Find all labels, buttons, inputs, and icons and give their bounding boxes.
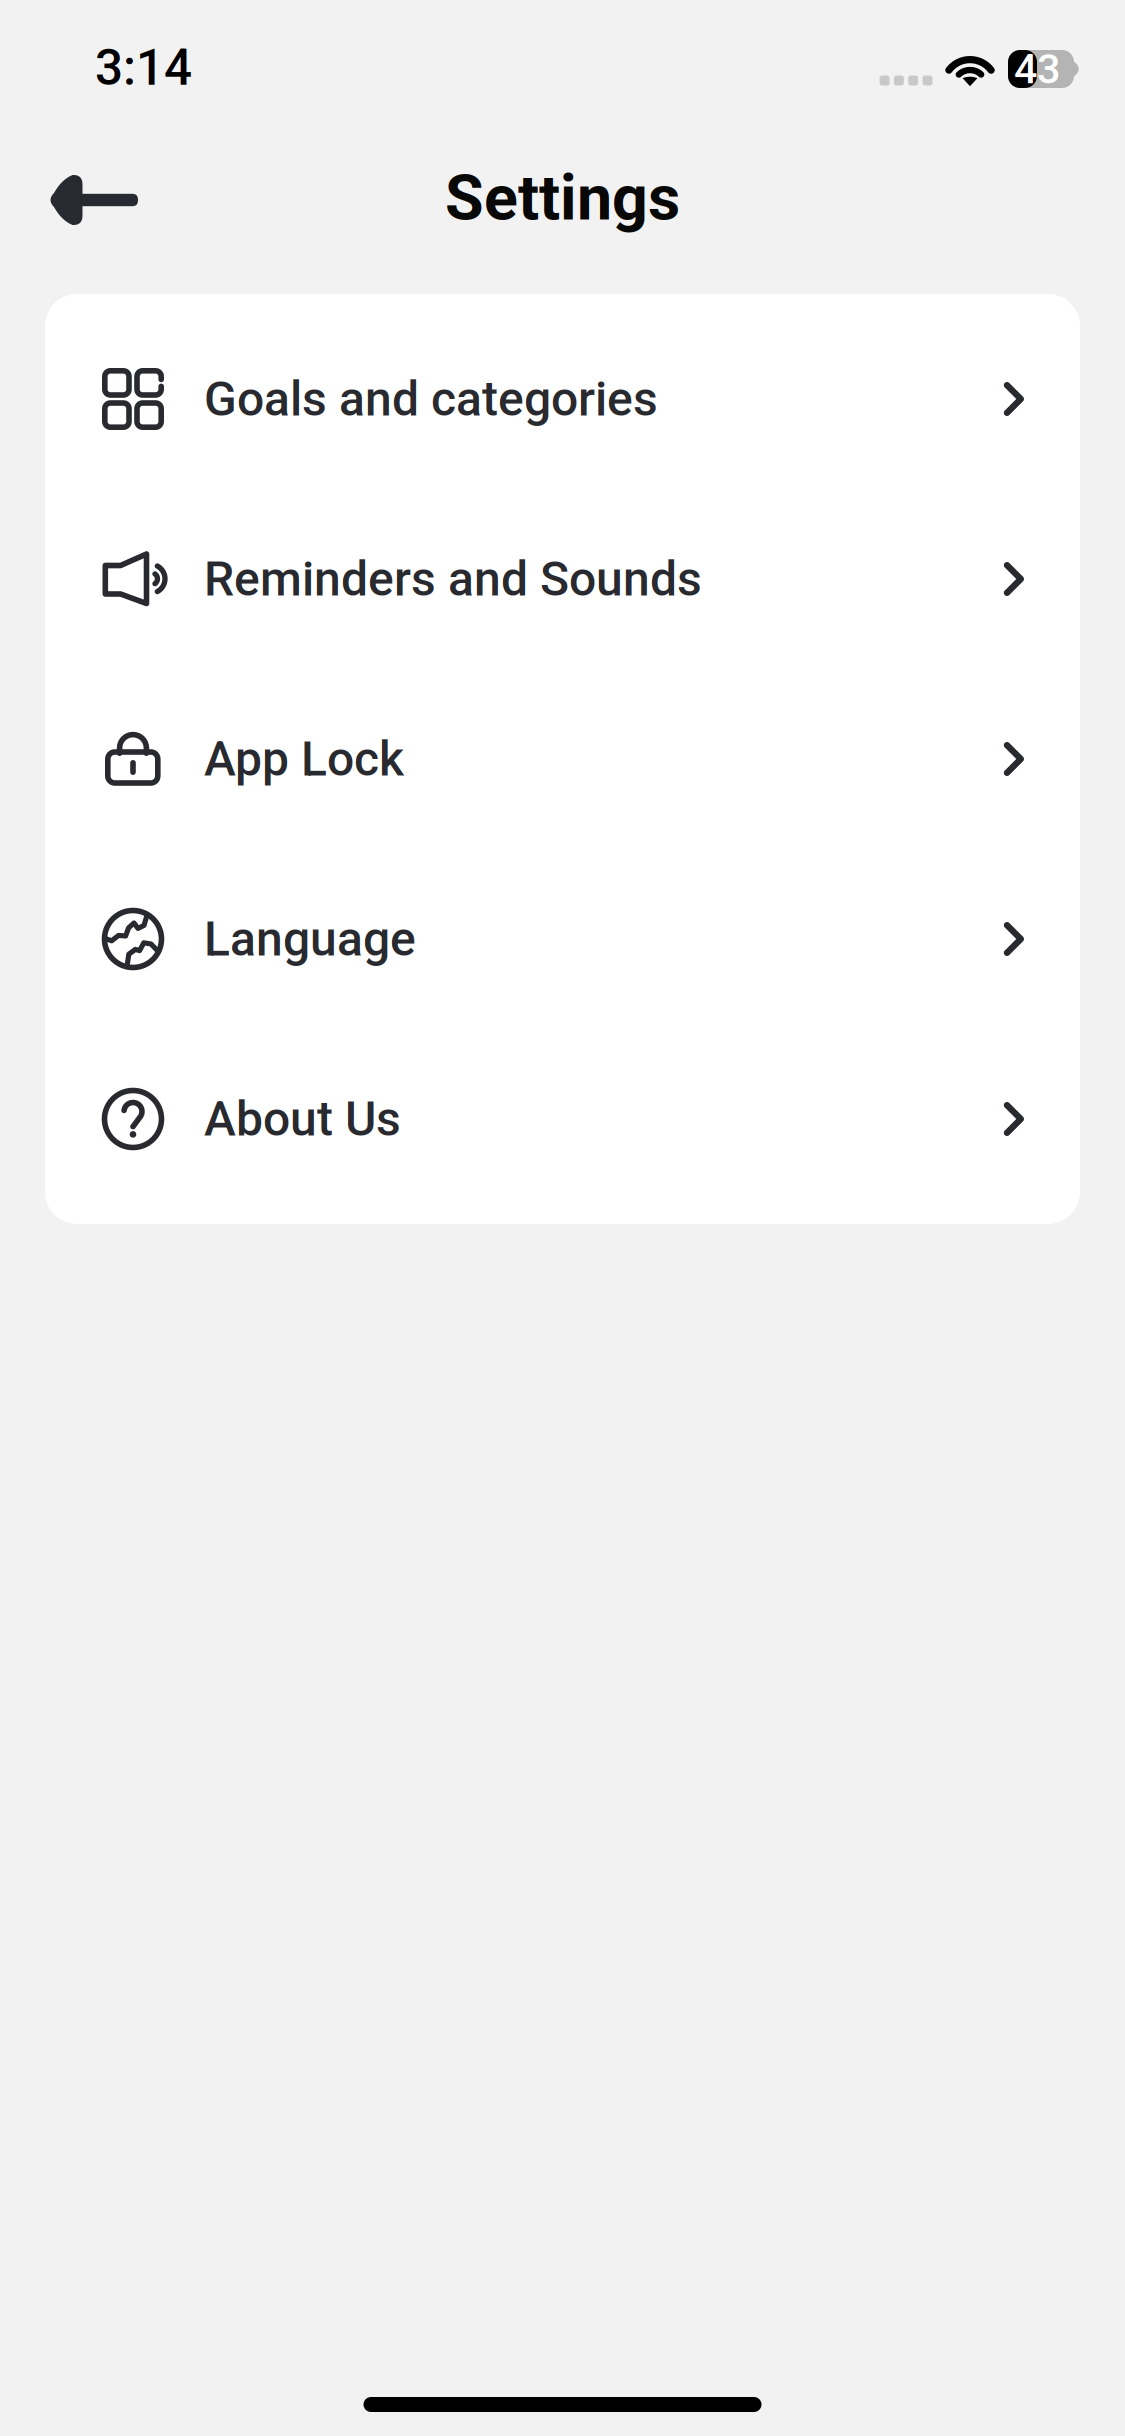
staticText: 3:14	[95, 39, 192, 97]
staticText: Reminders and Sounds	[204, 551, 702, 607]
button[interactable]: About Us	[45, 1029, 1080, 1209]
staticText: Settings	[445, 161, 680, 235]
staticText: Goals and categories	[204, 371, 658, 427]
button[interactable]: App Lock	[45, 669, 1080, 849]
button[interactable]: Language	[45, 849, 1080, 1029]
button[interactable]: Goals and categories	[45, 309, 1080, 489]
button[interactable]: Reminders and Sounds	[45, 489, 1080, 669]
staticText: Language	[204, 911, 416, 967]
staticText: 43	[1014, 45, 1060, 93]
button[interactable]: Back	[39, 150, 147, 250]
staticText: App Lock	[204, 731, 404, 787]
staticText: About Us	[204, 1091, 401, 1147]
